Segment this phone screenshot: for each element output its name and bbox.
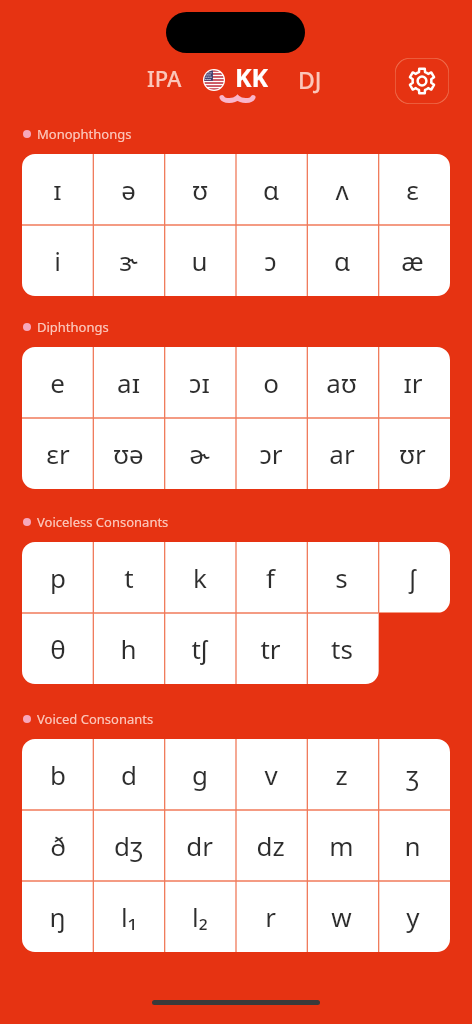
- button[interactable]: ɔr: [235, 418, 306, 489]
- staticText: h: [120, 631, 137, 666]
- button[interactable]: b: [22, 739, 93, 810]
- staticText: i: [54, 243, 61, 278]
- staticText: r: [265, 899, 276, 934]
- staticText: θ: [50, 631, 66, 666]
- button[interactable]: ɚ: [164, 418, 235, 489]
- button[interactable]: ɔ: [235, 225, 306, 296]
- button[interactable]: ʌ: [306, 154, 377, 225]
- button[interactable]: i: [22, 225, 93, 296]
- button[interactable]: dr: [164, 810, 235, 881]
- button[interactable]: y: [377, 881, 448, 952]
- button[interactable]: ʊ: [164, 154, 235, 225]
- staticText: z: [335, 757, 348, 792]
- staticText: w: [331, 899, 352, 934]
- button[interactable]: aʊ: [306, 347, 377, 418]
- button[interactable]: ɪr: [377, 347, 448, 418]
- staticText: e: [50, 365, 65, 400]
- staticText: ɔr: [259, 436, 283, 471]
- button[interactable]: ə: [93, 154, 164, 225]
- staticText: v: [264, 757, 278, 792]
- staticText: n: [404, 828, 421, 863]
- staticText: IPA: [147, 63, 182, 93]
- button[interactable]: r: [235, 881, 306, 952]
- button[interactable]: d: [93, 739, 164, 810]
- button[interactable]: ar: [306, 418, 377, 489]
- staticText: l₁: [121, 899, 137, 934]
- button[interactable]: tʃ: [164, 613, 235, 684]
- button[interactable]: ʃ: [377, 542, 448, 613]
- button[interactable]: o: [235, 347, 306, 418]
- button[interactable]: aɪ: [93, 347, 164, 418]
- button[interactable]: v: [235, 739, 306, 810]
- button[interactable]: ɪ: [22, 154, 93, 225]
- staticText: ʊr: [399, 436, 426, 471]
- button[interactable]: l₂: [164, 881, 235, 952]
- staticText: k: [193, 560, 207, 595]
- staticText: aɪ: [117, 365, 140, 400]
- button[interactable]: Settings: [395, 58, 449, 104]
- button[interactable]: ʊə: [93, 418, 164, 489]
- button[interactable]: z: [306, 739, 377, 810]
- button[interactable]: ʊr: [377, 418, 448, 489]
- button[interactable]: ɑ: [235, 154, 306, 225]
- staticText: Voiceless Consonants: [37, 513, 169, 531]
- staticText: ə: [121, 172, 136, 207]
- button[interactable]: h: [93, 613, 164, 684]
- button[interactable]: f: [235, 542, 306, 613]
- button[interactable]: æ: [377, 225, 448, 296]
- button[interactable]: KK: [196, 60, 272, 106]
- button[interactable]: ɔɪ: [164, 347, 235, 418]
- staticText: ts: [331, 631, 353, 666]
- staticText: m: [329, 828, 354, 863]
- button[interactable]: dz: [235, 810, 306, 881]
- staticText: ɪ: [53, 172, 62, 207]
- staticText: dʒ: [114, 828, 143, 863]
- button[interactable]: ɛ: [377, 154, 448, 225]
- staticText: o: [263, 365, 279, 400]
- staticText: ɔɪ: [189, 365, 210, 400]
- button[interactable]: ɛr: [22, 418, 93, 489]
- button[interactable]: ɝ: [93, 225, 164, 296]
- button[interactable]: w: [306, 881, 377, 952]
- button[interactable]: IPA: [141, 61, 187, 95]
- staticText: aʊ: [326, 365, 357, 400]
- button[interactable]: ŋ: [22, 881, 93, 952]
- staticText: ð: [50, 828, 66, 863]
- button[interactable]: s: [306, 542, 377, 613]
- button[interactable]: m: [306, 810, 377, 881]
- button[interactable]: n: [377, 810, 448, 881]
- button[interactable]: DJ: [288, 62, 332, 96]
- staticText: dr: [186, 828, 213, 863]
- staticText: tr: [260, 631, 281, 666]
- staticText: ʊə: [113, 436, 144, 471]
- staticText: y: [406, 899, 420, 934]
- button[interactable]: k: [164, 542, 235, 613]
- button[interactable]: dʒ: [93, 810, 164, 881]
- button[interactable]: ts: [306, 613, 377, 684]
- staticText: l₂: [192, 899, 208, 934]
- staticText: ɔ: [264, 243, 277, 278]
- staticText: ɪr: [403, 365, 423, 400]
- button[interactable]: t: [93, 542, 164, 613]
- button[interactable]: e: [22, 347, 93, 418]
- staticText: ɑ: [263, 172, 279, 207]
- button[interactable]: ɑ: [306, 225, 377, 296]
- staticText: g: [192, 757, 208, 792]
- staticText: ɛ: [406, 172, 419, 207]
- staticText: DJ: [298, 64, 322, 95]
- button[interactable]: tr: [235, 613, 306, 684]
- staticText: ŋ: [49, 899, 66, 934]
- staticText: Monophthongs: [37, 125, 132, 143]
- staticText: Diphthongs: [37, 318, 109, 336]
- staticText: tʃ: [191, 631, 208, 666]
- button[interactable]: p: [22, 542, 93, 613]
- staticText: s: [335, 560, 348, 595]
- button[interactable]: u: [164, 225, 235, 296]
- button[interactable]: ð: [22, 810, 93, 881]
- staticText: u: [191, 243, 208, 278]
- button[interactable]: θ: [22, 613, 93, 684]
- staticText: f: [266, 560, 275, 595]
- button[interactable]: ʒ: [377, 739, 448, 810]
- button[interactable]: g: [164, 739, 235, 810]
- button[interactable]: l₁: [93, 881, 164, 952]
